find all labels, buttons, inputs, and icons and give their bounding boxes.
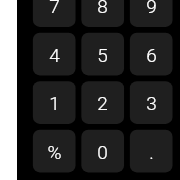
staticText: 7 [49,0,60,17]
button[interactable]: 5 [81,33,124,76]
staticText: 3 [146,92,157,114]
button[interactable]: . [130,130,173,173]
staticText: 6 [146,44,157,66]
staticText: 2 [97,92,108,114]
button[interactable]: 0 [81,130,124,173]
button[interactable]: 1 [33,81,76,124]
button[interactable]: 4 [33,33,76,76]
button[interactable]: 6 [130,33,173,76]
button[interactable]: 9 [130,0,173,27]
button[interactable]: % [33,130,76,173]
button[interactable]: 7 [33,0,76,27]
staticText: 8 [97,0,108,17]
staticText: . [149,141,154,163]
staticText: 1 [49,92,60,114]
staticText: 5 [97,44,108,66]
button[interactable]: 3 [130,81,173,124]
staticText: 0 [97,141,108,163]
staticText: 4 [49,44,60,66]
button[interactable]: 2 [81,81,124,124]
staticText: 9 [146,0,157,17]
button[interactable]: 8 [81,0,124,27]
staticText: % [47,141,62,163]
